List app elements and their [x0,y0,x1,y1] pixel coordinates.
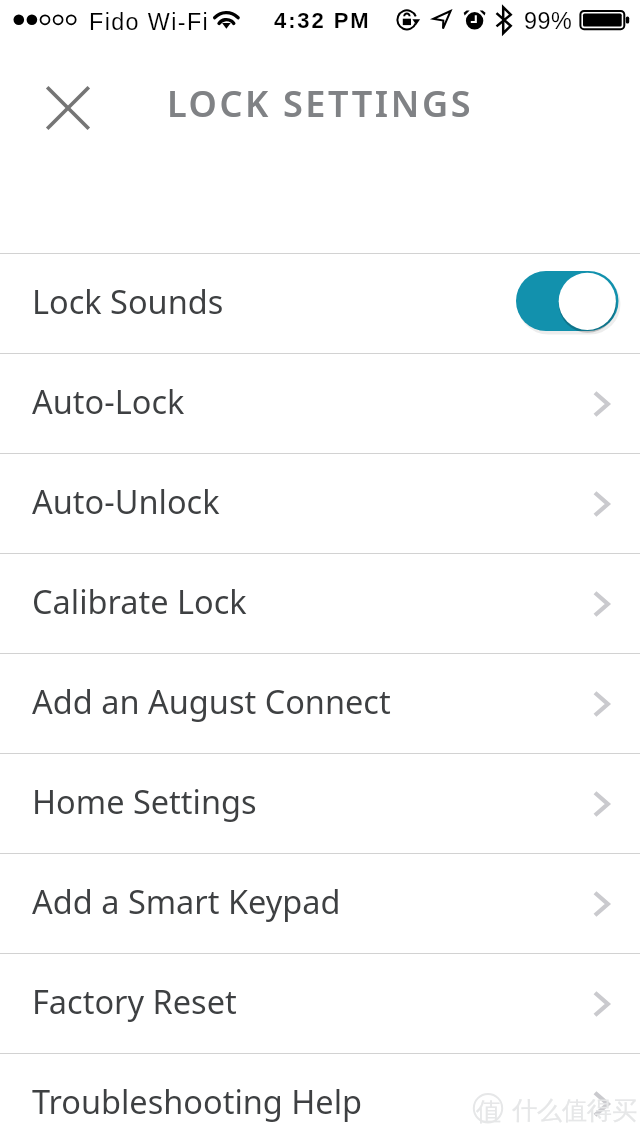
staticText: Calibrate Lock [32,579,247,623]
staticText: Auto-Unlock [32,479,220,523]
staticText: Lock Sounds [32,279,224,323]
staticText: 什么值得买 [512,1095,637,1126]
button[interactable]: Add an August Connect [0,654,640,753]
staticText: Add an August Connect [32,679,391,723]
button[interactable]: Auto-Unlock [0,454,640,553]
button[interactable]: Calibrate Lock [0,554,640,653]
staticText: Auto-Lock [32,379,185,423]
staticText: Factory Reset [32,979,237,1023]
button[interactable]: Troubleshooting Help [0,1054,640,1136]
button[interactable]: Lock Sounds [0,254,640,353]
staticText: LOCK SETTINGS [167,79,474,128]
staticText: 值 [476,1096,501,1127]
button[interactable]: Factory Reset [0,954,640,1053]
button[interactable]: Home Settings [0,754,640,853]
button[interactable]: Auto-Lock [0,354,640,453]
staticText: Troubleshooting Help [32,1079,363,1123]
staticText: 99% [524,8,573,34]
staticText: Home Settings [32,779,257,823]
staticText: Fido Wi-Fi [89,9,210,35]
staticText: 4:32 PM [274,8,371,33]
button[interactable]: Add a Smart Keypad [0,854,640,953]
staticText: Add a Smart Keypad [32,879,341,923]
button[interactable]: Close [37,77,99,139]
button[interactable]: Lock Sounds toggle, on [516,271,624,337]
